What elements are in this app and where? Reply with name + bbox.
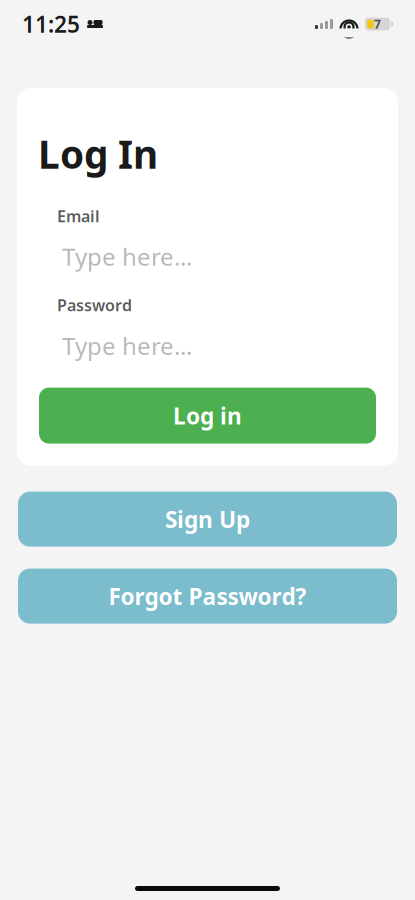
staticText: Forgot Password? bbox=[108, 581, 306, 611]
staticText: Sign Up bbox=[165, 504, 250, 534]
staticText: Log in bbox=[173, 400, 242, 431]
staticText: Email bbox=[57, 205, 100, 226]
staticText: Log In bbox=[38, 128, 158, 179]
staticText: Password bbox=[57, 294, 132, 316]
button[interactable]: Sign Up bbox=[18, 492, 397, 547]
staticText: Type here... bbox=[62, 330, 192, 362]
button[interactable]: Forgot Password? bbox=[18, 569, 397, 624]
button[interactable]: Log in bbox=[39, 388, 376, 444]
staticText: 11:25 bbox=[22, 9, 80, 39]
staticText: 7 bbox=[374, 16, 381, 32]
staticText: Type here... bbox=[62, 241, 192, 272]
